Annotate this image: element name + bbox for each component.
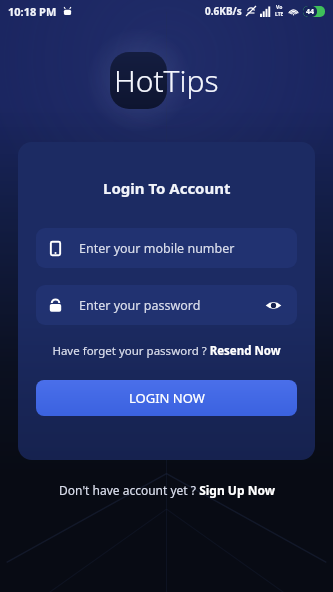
button[interactable]: Show password (261, 293, 285, 317)
staticText: Enter your mobile number (79, 240, 235, 257)
staticText: Login To Account (103, 178, 231, 198)
button[interactable]: Enter your password (36, 285, 297, 325)
staticText: 44 (306, 7, 315, 17)
staticText: Enter your password (79, 297, 201, 314)
staticText: HotTips (114, 60, 219, 101)
staticText: 10:18 PM (8, 4, 57, 19)
button[interactable]: LOGIN NOW (36, 380, 297, 416)
button[interactable]: Have forget your password ? Resend Now (36, 343, 297, 359)
staticText: 0.6KB/s (205, 4, 242, 18)
staticText: LOGIN NOW (129, 389, 205, 407)
staticText: Don't have account yet ? Sign Up Now (59, 482, 275, 498)
button[interactable]: Enter your mobile number (36, 228, 297, 268)
staticText: Have forget your password ? Resend Now (52, 343, 281, 359)
button[interactable]: Don't have account yet ? Sign Up Now (0, 478, 333, 502)
staticText: Vo (276, 4, 283, 11)
staticText: LTE (275, 11, 284, 18)
